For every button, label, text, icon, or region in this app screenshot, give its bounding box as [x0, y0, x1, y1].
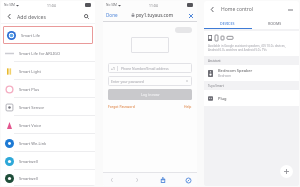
button[interactable]: Back: [208, 5, 217, 14]
button[interactable]: Forward: [133, 176, 141, 184]
button[interactable]: ROOMS: [251, 17, 299, 29]
staticText: Smartwell: [19, 176, 38, 181]
staticText: Assistant: [208, 59, 221, 63]
button[interactable]: Share: [158, 175, 167, 184]
staticText: Done: [106, 12, 118, 18]
staticText: Bedroom Speaker: [218, 68, 253, 73]
button[interactable]: Enter your password: [108, 76, 192, 86]
button[interactable]: DEVICES: [204, 17, 251, 29]
button[interactable]: Close: [187, 12, 194, 19]
staticText: Available in Google assistant speakers, …: [208, 44, 295, 52]
button[interactable]: Search: [82, 12, 91, 21]
button[interactable]: Smart Life: [3, 26, 93, 44]
staticText: Smart Life: [21, 33, 41, 38]
staticText: Plug: [218, 96, 227, 101]
button[interactable]: Add device: [280, 165, 293, 178]
staticText: Home control: [221, 6, 254, 13]
button[interactable]: Smart Sensor: [1, 98, 95, 116]
staticText: Help: [184, 104, 192, 109]
staticText: +1: [111, 66, 115, 71]
staticText: Smart Voice: [19, 123, 42, 128]
button[interactable]: Smart Voice: [1, 116, 95, 134]
staticText: 11:04: [47, 3, 56, 8]
button[interactable]: Smart Plus: [1, 80, 95, 98]
button[interactable]: Smartwell: [1, 152, 95, 170]
button[interactable]: Tabs: [184, 176, 192, 184]
staticText: Add devices: [17, 13, 46, 20]
staticText: DEVICES: [220, 21, 235, 26]
button[interactable]: Back: [108, 176, 116, 184]
staticText: Smart Life for ARLIGO: [19, 51, 61, 56]
staticText: No SIM: [106, 3, 117, 7]
button[interactable]: Smartwell: [1, 170, 95, 186]
staticText: Enter your password: [111, 79, 144, 84]
staticText: Phone Number/Email address: [121, 66, 169, 71]
button[interactable]: Smart Light: [1, 62, 95, 80]
staticText: No SIM: [4, 3, 15, 7]
button[interactable]: Log in now: [108, 89, 192, 100]
button[interactable]: Forgot Password: [108, 104, 135, 109]
button[interactable]: More options: [286, 5, 295, 14]
staticText: Smartwell: [19, 159, 38, 164]
button[interactable]: Done: [106, 12, 118, 18]
staticText: Smart Light: [19, 69, 41, 74]
staticText: pxy1.tuyaus.com: [136, 12, 174, 18]
staticText: Smart Sensor: [19, 105, 45, 110]
button[interactable]: +1: [108, 63, 192, 73]
button[interactable]: Plug: [208, 90, 295, 106]
button[interactable]: Smart Life for ARLIGO: [1, 44, 95, 62]
staticText: Smart We-Link: [19, 141, 47, 146]
button[interactable]: Bedroom Speaker: [208, 65, 295, 81]
staticText: Bedroom: [218, 74, 232, 78]
button[interactable]: Back: [5, 12, 14, 21]
staticText: 11:04: [149, 3, 158, 8]
button[interactable]: Smart We-Link: [1, 134, 95, 152]
button[interactable]: [175, 27, 192, 33]
staticText: Forgot Password: [108, 104, 135, 109]
staticText: Log in now: [141, 92, 160, 97]
staticText: Smart Plus: [19, 87, 40, 92]
staticText: ROOMS: [268, 21, 282, 26]
staticText: Tuya Smart: [208, 84, 224, 88]
button[interactable]: Help: [184, 104, 192, 109]
